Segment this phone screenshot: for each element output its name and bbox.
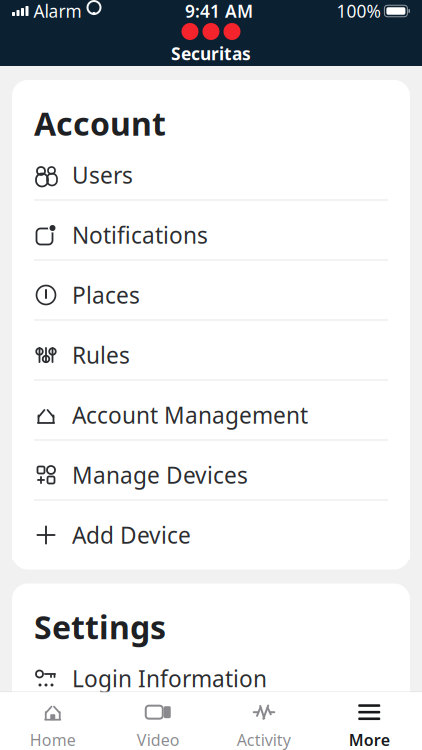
staticText: More (349, 729, 390, 750)
staticText: Account Management (72, 400, 308, 430)
staticText: Manage Devices (72, 460, 248, 490)
staticText: Account (34, 102, 166, 144)
staticText: Video (137, 729, 180, 750)
staticText: 9:41 AM (185, 0, 253, 22)
staticText: Securitas (171, 42, 251, 65)
button[interactable]: Add Device (12, 510, 410, 559)
button[interactable]: Login Information (12, 654, 410, 704)
staticText: Settings (34, 605, 166, 648)
staticText: Rules (72, 340, 130, 370)
staticText: Places (72, 280, 140, 310)
button[interactable]: Rules (12, 330, 410, 380)
button[interactable]: Users (12, 150, 410, 200)
staticText: Login Information (72, 663, 267, 693)
staticText: Alarm (33, 0, 81, 22)
button[interactable]: Activity (211, 692, 316, 750)
button[interactable]: Home (0, 692, 105, 750)
staticText: Activity (237, 729, 291, 750)
button[interactable]: Account Management (12, 390, 410, 440)
staticText: Home (30, 729, 76, 750)
button[interactable]: App Settings (12, 714, 410, 750)
button[interactable]: Video (105, 692, 211, 750)
staticText: Users (72, 160, 133, 190)
staticText: Add Device (72, 520, 191, 550)
staticText: Notifications (72, 220, 208, 250)
button[interactable]: Notifications (12, 210, 410, 260)
staticText: App Settings (72, 723, 206, 750)
staticText: 100% (336, 0, 380, 22)
button[interactable]: Manage Devices (12, 450, 410, 500)
button[interactable]: More (316, 692, 422, 750)
button[interactable]: Places (12, 270, 410, 320)
